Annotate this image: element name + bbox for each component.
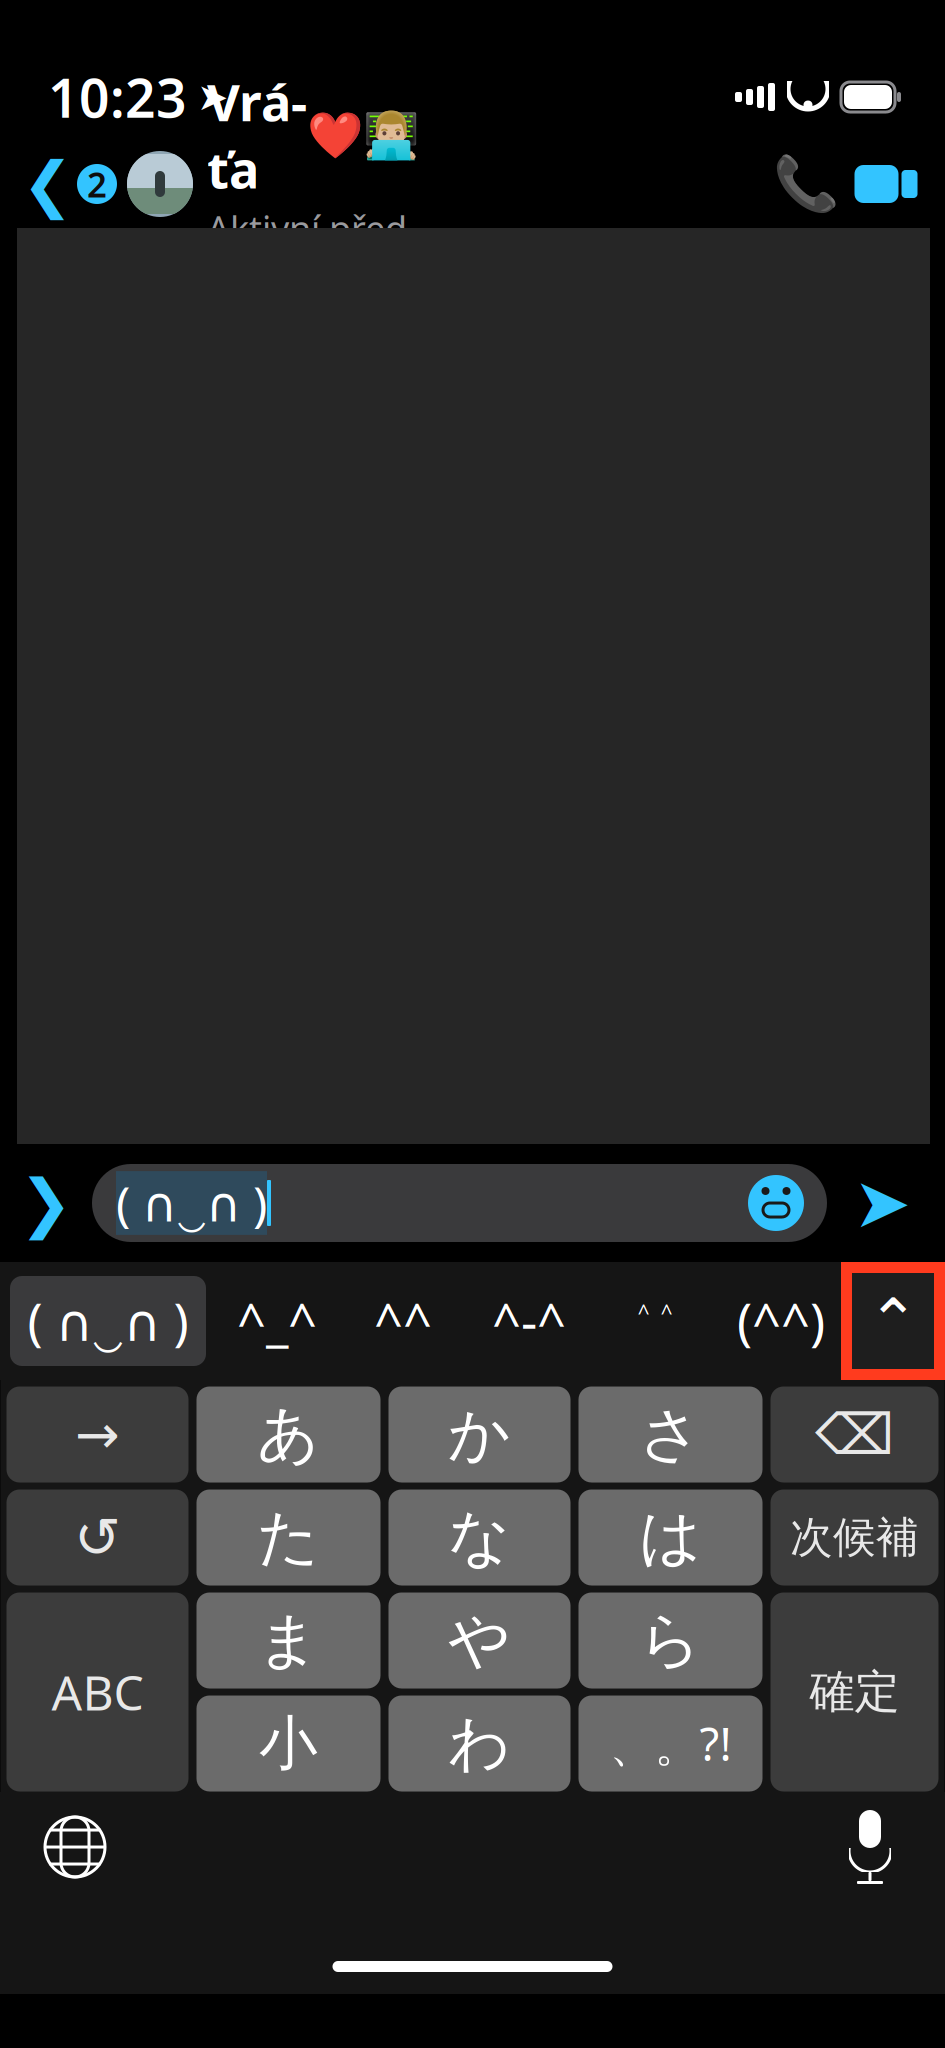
staticText: Vráťa — [207, 68, 307, 202]
button[interactable]: 次候補 — [770, 1489, 938, 1585]
staticText: 👨🏼‍💻 — [363, 109, 419, 161]
staticText: 10:23 — [48, 62, 187, 132]
button[interactable]: な — [388, 1489, 570, 1585]
button[interactable]: More kaomoji — [841, 1262, 945, 1380]
staticText: ➤ — [197, 76, 228, 118]
button[interactable]: Video call — [843, 141, 929, 227]
button[interactable]: Audio call — [769, 141, 843, 227]
staticText: ^^ — [374, 1287, 432, 1355]
staticText: ⌫ — [815, 1403, 894, 1466]
button[interactable]: Emoji — [747, 1174, 827, 1232]
staticText: わ — [448, 1706, 511, 1781]
button[interactable]: や — [388, 1592, 570, 1688]
button[interactable]: ( ∩‿∩ ) — [10, 1276, 206, 1366]
staticText: た — [257, 1500, 320, 1575]
staticText: → — [75, 1404, 120, 1465]
button[interactable]: Send — [827, 1148, 937, 1258]
staticText: 📞 — [773, 153, 839, 214]
button[interactable]: More options — [0, 1148, 92, 1258]
staticText: ˄ ˄ — [637, 1293, 672, 1349]
button[interactable]: あ — [196, 1386, 380, 1482]
staticText: 、。?! — [609, 1713, 731, 1774]
button[interactable]: → — [6, 1386, 188, 1482]
staticText: あ — [257, 1397, 320, 1472]
staticText: ❯ — [19, 1167, 73, 1239]
staticText: や — [448, 1603, 511, 1678]
button[interactable]: ^_^ — [217, 1276, 337, 1366]
button[interactable]: は — [578, 1489, 762, 1585]
button[interactable]: ˄ ˄ — [600, 1276, 710, 1366]
staticText: ABC — [51, 1660, 143, 1724]
staticText: な — [448, 1500, 511, 1575]
button[interactable]: (^^) — [721, 1276, 841, 1366]
staticText: ↺ — [74, 1506, 121, 1569]
staticText: 確定 — [809, 1664, 899, 1720]
staticText: ( ∩‿∩ ) — [116, 1171, 267, 1235]
staticText: ⌃ — [867, 1286, 918, 1356]
staticText: ➤ — [853, 1164, 911, 1242]
staticText: か — [448, 1397, 511, 1472]
staticText: 2 — [87, 161, 107, 207]
staticText: 小 — [259, 1707, 318, 1780]
staticText: ら — [639, 1603, 702, 1678]
staticText: 次候補 — [790, 1511, 919, 1564]
button[interactable]: 小 — [196, 1695, 380, 1791]
button[interactable]: Next keyboard — [0, 1792, 150, 1902]
staticText: ❮ — [22, 149, 73, 219]
staticText: ^_^ — [237, 1287, 317, 1355]
button[interactable]: ら — [578, 1592, 762, 1688]
button[interactable]: ま — [196, 1592, 380, 1688]
staticText: は — [639, 1500, 702, 1575]
button[interactable]: Back, 2 unread — [0, 141, 127, 227]
button[interactable]: ⌫ — [770, 1386, 938, 1482]
button[interactable]: ↺ — [6, 1489, 188, 1585]
button[interactable]: Dictation — [795, 1792, 945, 1902]
button[interactable]: ABC — [6, 1592, 188, 1791]
staticText: ( ∩‿∩ ) — [27, 1287, 188, 1355]
button[interactable]: 、。?! — [578, 1695, 762, 1791]
button[interactable]: Vráťa — [127, 141, 448, 227]
button[interactable]: た — [196, 1489, 380, 1585]
staticText: Aktivní před 33 min. — [207, 204, 407, 300]
staticText: ^-^ — [492, 1287, 566, 1355]
staticText: ま — [257, 1603, 320, 1678]
button[interactable]: わ — [388, 1695, 570, 1791]
button[interactable]: か — [388, 1386, 570, 1482]
button[interactable]: さ — [578, 1386, 762, 1482]
staticText: ❤️ — [307, 109, 363, 161]
button[interactable]: ^^ — [348, 1276, 458, 1366]
staticText: さ — [639, 1397, 702, 1472]
staticText: (^^) — [737, 1287, 825, 1355]
button[interactable]: 確定 — [770, 1592, 938, 1791]
button[interactable]: ^-^ — [469, 1276, 589, 1366]
